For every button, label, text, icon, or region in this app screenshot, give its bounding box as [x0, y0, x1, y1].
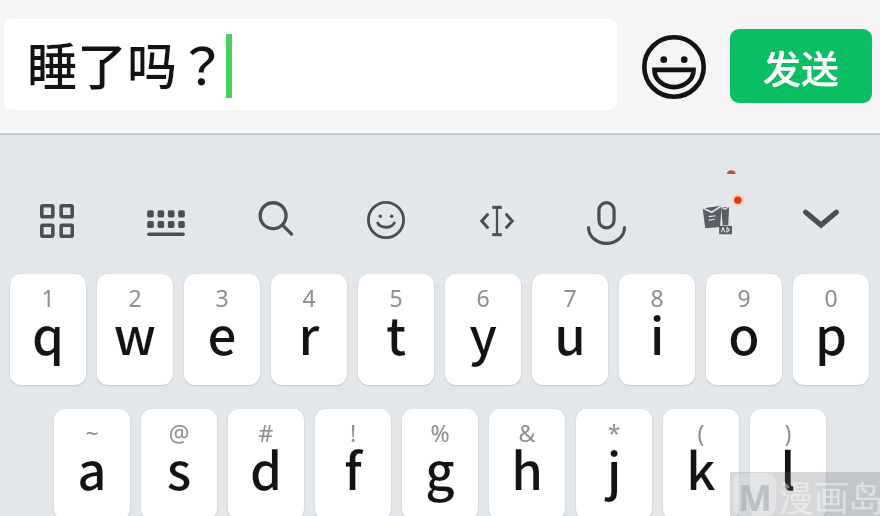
staticText: ! — [315, 417, 391, 448]
staticText: * — [576, 417, 652, 448]
staticText: s — [141, 431, 217, 505]
staticText: # — [228, 417, 304, 448]
button[interactable]: Symbols — [24, 188, 90, 254]
staticText: 漫画岛 — [779, 476, 880, 516]
button[interactable]: * — [576, 409, 652, 516]
staticText: f — [315, 431, 391, 505]
staticText: 睡了吗？ — [27, 27, 227, 99]
staticText: i — [619, 296, 695, 370]
button[interactable]: 5 — [358, 274, 434, 385]
button[interactable]: 8 — [619, 274, 695, 385]
button[interactable]: & — [489, 409, 565, 516]
button[interactable]: 发送 — [730, 29, 872, 103]
staticText: 4 — [271, 282, 347, 313]
staticText: & — [489, 417, 565, 448]
staticText: j — [576, 431, 652, 505]
staticText: e — [184, 296, 260, 370]
staticText: 1 — [10, 282, 86, 313]
staticText: ~ — [54, 417, 130, 448]
staticText: 3 — [184, 282, 260, 313]
staticText: r — [271, 296, 347, 370]
staticText: g — [402, 431, 478, 505]
staticText: ( — [663, 417, 739, 448]
button[interactable]: Emoji — [641, 34, 707, 100]
button[interactable]: Search — [243, 187, 309, 253]
button[interactable]: ~ — [54, 409, 130, 516]
staticText: 0 — [793, 282, 869, 313]
staticText: 7 — [532, 282, 608, 313]
staticText: ) — [750, 417, 826, 448]
staticText: 2 — [97, 282, 173, 313]
staticText: y — [445, 296, 521, 370]
button[interactable]: 6 — [445, 274, 521, 385]
button[interactable]: ( — [663, 409, 739, 516]
staticText: M — [738, 473, 772, 516]
staticText: o — [706, 296, 782, 370]
staticText: q — [10, 296, 86, 370]
staticText: 8 — [619, 282, 695, 313]
button[interactable]: 3 — [184, 274, 260, 385]
staticText: w — [97, 296, 173, 370]
staticText: p — [793, 296, 869, 370]
staticText: 5 — [358, 282, 434, 313]
button[interactable]: Move cursor — [464, 188, 530, 254]
button[interactable]: ! — [315, 409, 391, 516]
staticText: a — [54, 431, 130, 505]
button[interactable]: # — [228, 409, 304, 516]
button[interactable]: 睡了吗？ — [4, 19, 617, 110]
staticText: d — [228, 431, 304, 505]
staticText: k — [663, 431, 739, 505]
button[interactable]: Keyboard layout — [133, 188, 199, 254]
button[interactable]: ) — [750, 409, 826, 516]
staticText: 9 — [706, 282, 782, 313]
button[interactable]: 1 — [10, 274, 86, 385]
staticText: l — [750, 431, 826, 505]
button[interactable]: Emoticons — [353, 187, 419, 253]
staticText: t — [358, 296, 434, 370]
button[interactable]: 2 — [97, 274, 173, 385]
staticText: h — [489, 431, 565, 505]
button[interactable]: Voice input — [573, 187, 639, 253]
staticText: @ — [141, 417, 217, 448]
button[interactable]: 7 — [532, 274, 608, 385]
staticText: % — [402, 417, 478, 448]
button[interactable]: 0 — [793, 274, 869, 385]
button[interactable]: Hide keyboard — [788, 187, 854, 253]
button[interactable]: @ — [141, 409, 217, 516]
button[interactable]: 9 — [706, 274, 782, 385]
button[interactable]: 4 — [271, 274, 347, 385]
staticText: 发送 — [763, 39, 840, 94]
button[interactable]: Remove ads — [687, 168, 753, 234]
staticText: 6 — [445, 282, 521, 313]
staticText: u — [532, 296, 608, 370]
button[interactable]: % — [402, 409, 478, 516]
